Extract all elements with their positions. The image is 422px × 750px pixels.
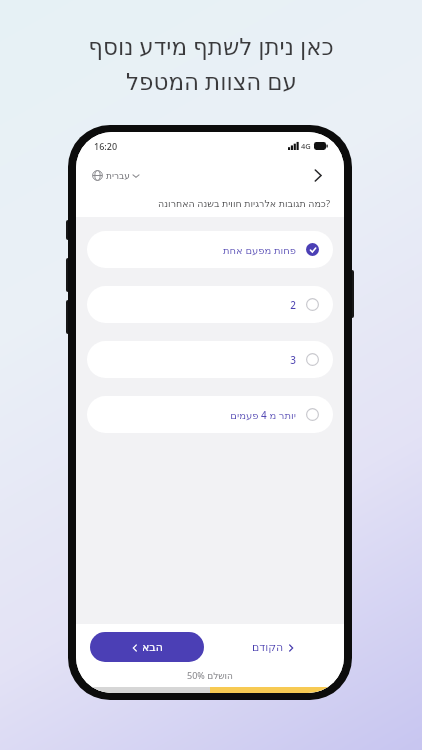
staticText: עברית: [106, 171, 130, 181]
staticText: יותר מ 4 פעמים: [230, 408, 296, 422]
staticText: פחות מפעם אחת: [223, 243, 296, 257]
button[interactable]: Close: [304, 162, 330, 188]
staticText: הבא: [142, 641, 163, 654]
button[interactable]: הבא: [90, 632, 204, 662]
button[interactable]: 3: [87, 341, 333, 378]
button[interactable]: הקודם: [216, 632, 330, 662]
button[interactable]: פחות מפעם אחת: [87, 231, 333, 268]
staticText: כאן ניתן לשתף מידע נוסף: [88, 30, 334, 61]
staticText: 2: [290, 298, 296, 312]
staticText: עם הצוות המטפל: [126, 65, 297, 96]
button[interactable]: 2: [87, 286, 333, 323]
button[interactable]: עברית: [90, 168, 141, 183]
button[interactable]: יותר מ 4 פעמים: [87, 396, 333, 433]
staticText: 4G: [301, 141, 311, 151]
staticText: כמה תגובות אלרגיות חווית בשנה האחרונה?: [158, 197, 330, 210]
staticText: הקודם: [252, 641, 284, 654]
staticText: 16:20: [94, 140, 118, 152]
staticText: 50% הושלם: [76, 669, 344, 681]
staticText: 3: [290, 353, 296, 367]
